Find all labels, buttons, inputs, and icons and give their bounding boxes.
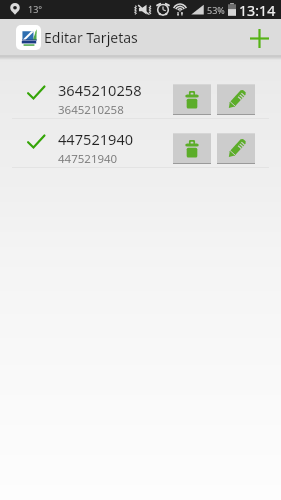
staticText: Editar Tarjetas: [44, 28, 138, 47]
staticText: 447521940: [58, 151, 118, 167]
button[interactable]: Edit: [217, 84, 255, 115]
staticText: 53%: [207, 4, 225, 16]
button[interactable]: Edit: [217, 133, 255, 164]
button[interactable]: 447521940: [0, 119, 281, 167]
staticText: 447521940: [58, 129, 134, 149]
staticText: 3645210258: [58, 102, 124, 118]
staticText: 13:14: [239, 1, 276, 20]
button[interactable]: Delete: [173, 84, 211, 115]
button[interactable]: 3645210258: [0, 70, 281, 118]
staticText: 3645210258: [58, 80, 142, 100]
button[interactable]: Delete: [173, 133, 211, 164]
staticText: 13°: [28, 3, 43, 15]
button[interactable]: Add card: [246, 25, 272, 51]
